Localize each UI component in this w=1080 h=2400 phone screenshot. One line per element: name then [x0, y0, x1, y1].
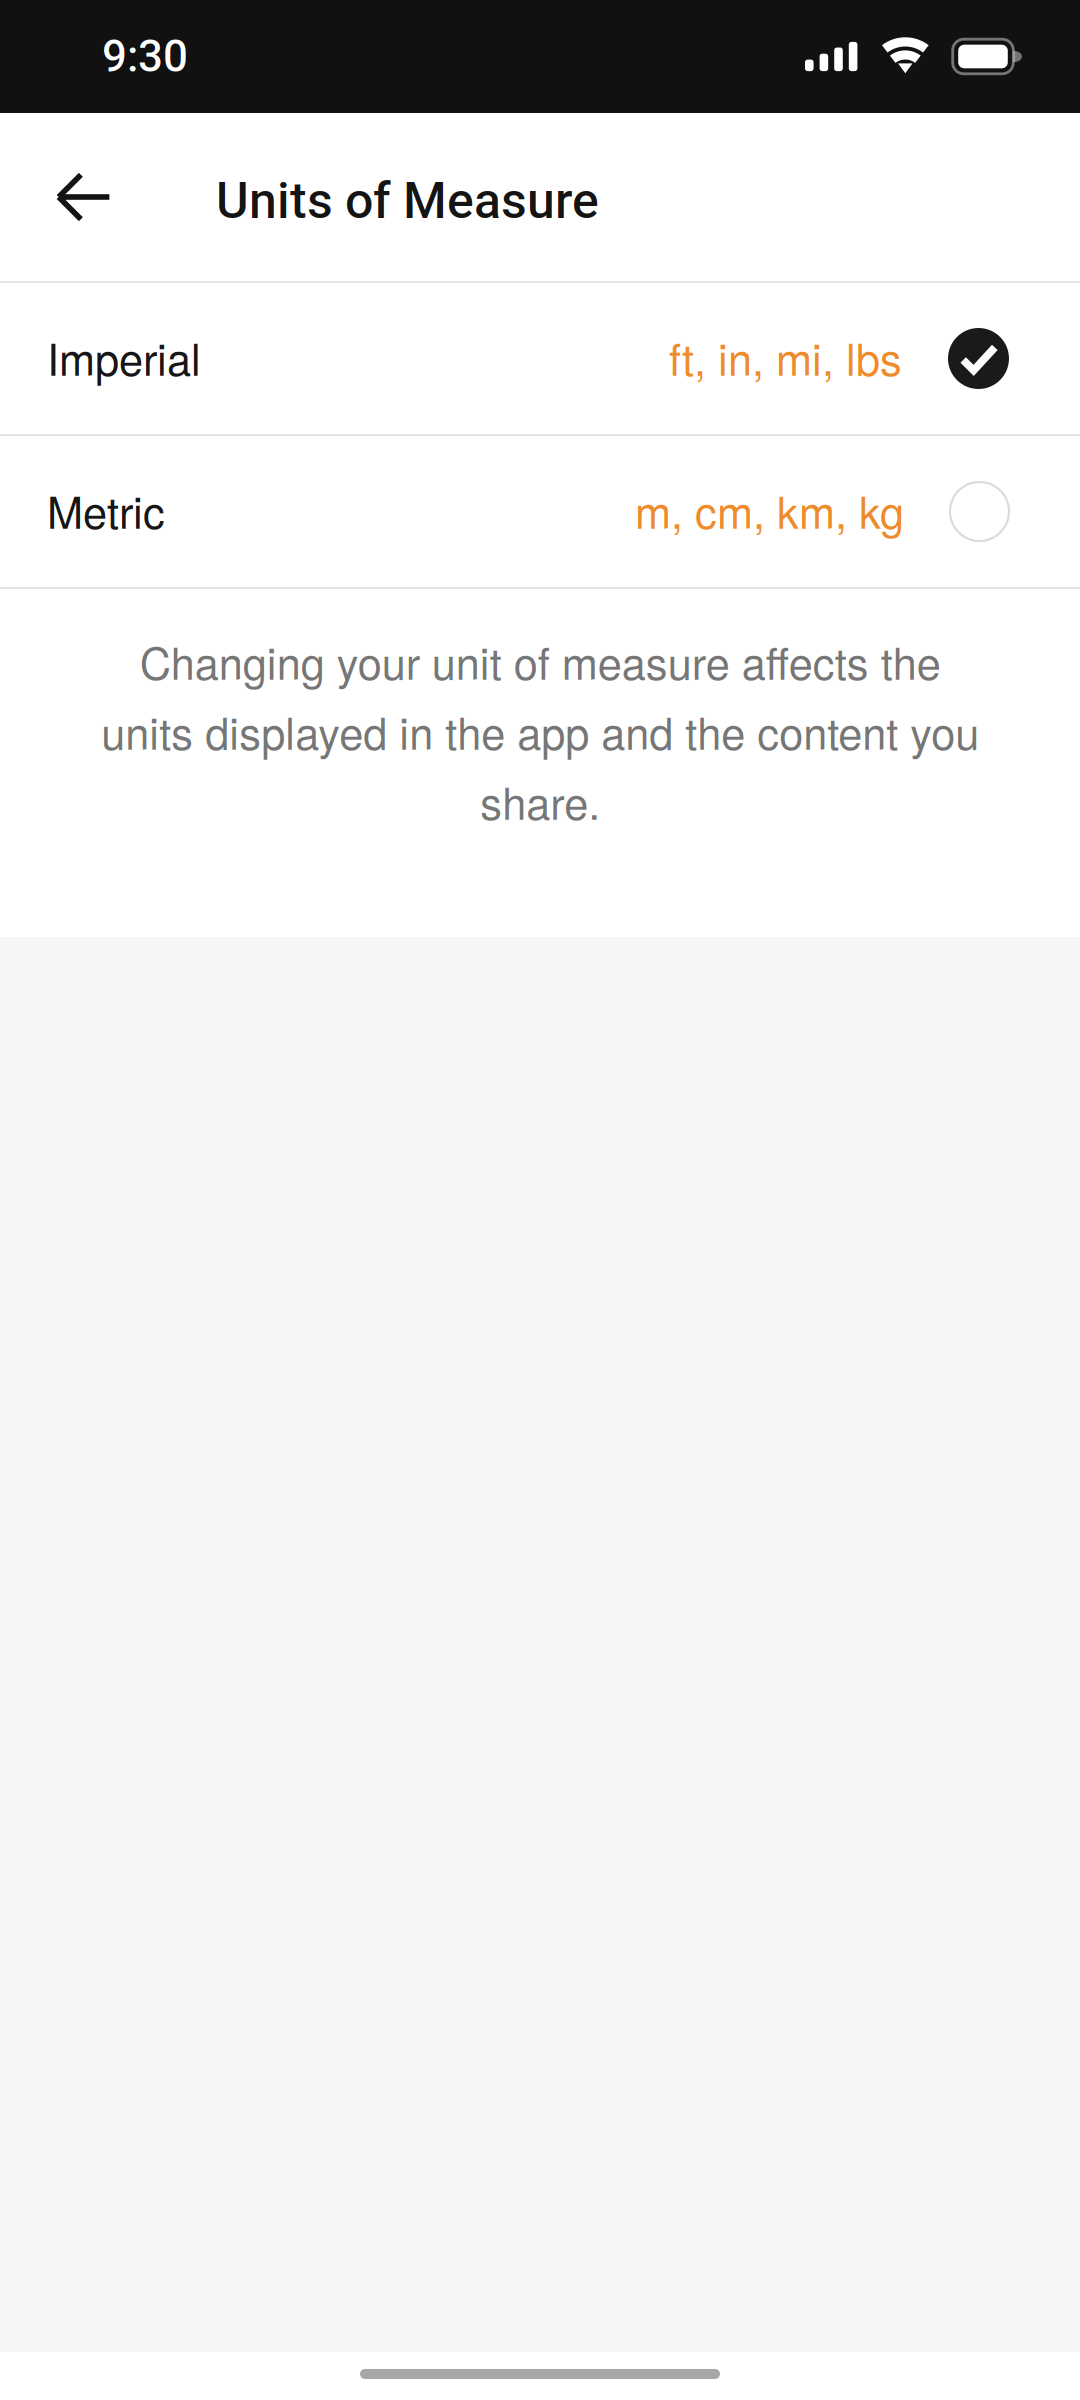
- staticText: ft, in, mi, lbs: [669, 326, 902, 388]
- button[interactable]: Metric: [0, 436, 1080, 587]
- button[interactable]: Back: [28, 137, 140, 257]
- staticText: m, cm, km, kg: [635, 479, 904, 541]
- button[interactable]: Imperial: [0, 283, 1080, 434]
- staticText: 9:30: [102, 31, 188, 82]
- staticText: Imperial: [47, 326, 201, 388]
- staticText: Units of Measure: [216, 172, 599, 230]
- staticText: Changing your unit of measure affects th…: [101, 630, 979, 832]
- staticText: Metric: [47, 479, 165, 541]
